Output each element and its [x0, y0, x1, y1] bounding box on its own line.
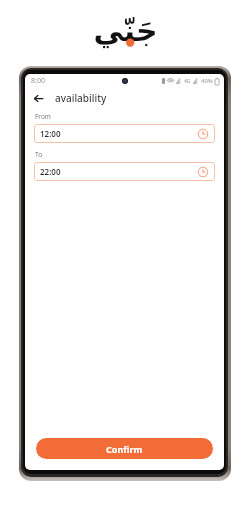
- staticText: جَنّي: [93, 13, 158, 48]
- staticText: 22:00: [40, 166, 61, 177]
- button[interactable]: 22:00: [34, 162, 215, 181]
- button[interactable]: 12:00: [34, 124, 215, 143]
- staticText: From: [35, 112, 51, 121]
- other: Pick time: [197, 166, 209, 178]
- button[interactable]: Back: [29, 89, 47, 107]
- staticText: 8:00: [31, 76, 45, 86]
- staticText: 40%: [201, 77, 213, 85]
- button[interactable]: Confirm: [36, 438, 213, 459]
- staticText: availability: [55, 91, 107, 105]
- other: Pick time: [197, 128, 209, 140]
- staticText: Confirm: [106, 443, 143, 455]
- staticText: 4G: [184, 78, 191, 85]
- staticText: To: [35, 150, 43, 159]
- staticText: 12:00: [40, 128, 61, 139]
